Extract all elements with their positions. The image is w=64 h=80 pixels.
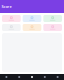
button[interactable]: Profile: [51, 74, 64, 80]
button[interactable]: Add: [26, 74, 38, 80]
button[interactable]: D: [2, 24, 21, 31]
staticText: Score: [1, 4, 11, 9]
button[interactable]: Activity: [38, 74, 51, 80]
button[interactable]: Home: [0, 74, 13, 80]
button[interactable]: C: [43, 15, 62, 22]
button[interactable]: A: [2, 15, 21, 22]
button[interactable]: B: [23, 15, 41, 22]
button[interactable]: E: [23, 24, 41, 31]
button[interactable]: Search: [13, 74, 26, 80]
button[interactable]: F: [43, 24, 62, 31]
